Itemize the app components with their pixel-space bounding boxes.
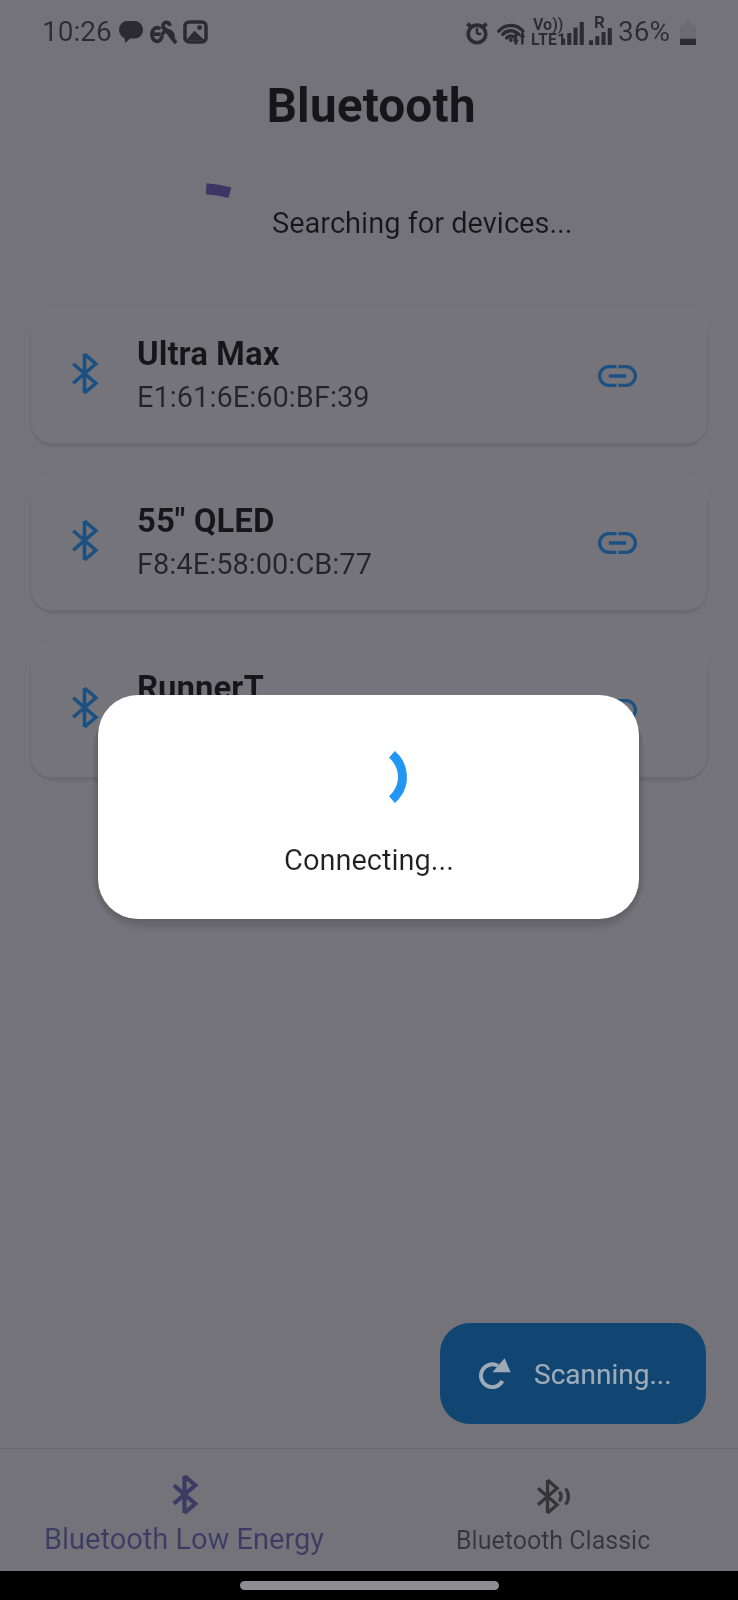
staticText: 55" QLED [137,501,275,540]
staticText: Bluetooth Low Energy [44,1522,325,1556]
button[interactable]: Bluetooth Classic [369,1449,738,1571]
button[interactable]: RunnerT [31,643,707,777]
staticText: 36% [618,15,670,48]
staticText: Scanning... [534,1358,672,1391]
staticText: F8:4E:58:00:CB:77 [137,547,372,581]
button[interactable]: Scanning... [440,1323,706,1424]
staticText: Connecting... [284,843,454,877]
button[interactable]: Bluetooth Low Energy [0,1449,369,1571]
button[interactable]: Connect to RunnerT [581,674,653,746]
staticText: Searching for devices... [272,206,573,240]
staticText: Bluetooth Classic [456,1526,651,1555]
staticText: Bluetooth [2,77,738,133]
staticText: E1:61:6E:60:BF:39 [137,380,370,414]
button[interactable]: Connect to 55" QLED [581,507,653,579]
staticText: Vo)) [533,15,564,34]
button[interactable]: Ultra Max [31,309,707,443]
staticText: R [594,12,605,32]
staticText: RunnerT [137,668,264,707]
staticText: LTE1 [531,30,567,49]
staticText: Ultra Max [137,334,280,373]
button[interactable]: 55" QLED [31,476,707,610]
button[interactable]: Connect to Ultra Max [581,340,653,412]
staticText: 10:26 [42,15,112,48]
